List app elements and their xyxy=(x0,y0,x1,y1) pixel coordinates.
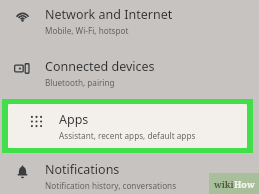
other: Connected devices xyxy=(0,60,45,77)
staticText: Notification history, conversations xyxy=(45,180,177,191)
staticText: Apps xyxy=(59,111,89,128)
button[interactable]: Network and Internet xyxy=(0,0,259,36)
button[interactable]: Apps xyxy=(14,104,247,141)
staticText: wiki xyxy=(214,178,234,190)
staticText: Connected devices xyxy=(45,58,155,75)
button[interactable]: Connected devices xyxy=(0,52,259,88)
staticText: How xyxy=(234,178,255,190)
other: Network and Internet xyxy=(0,8,45,25)
button[interactable]: Apps xyxy=(8,104,247,148)
staticText: Bluetooth, pairing xyxy=(45,77,115,88)
staticText: Notifications xyxy=(45,161,120,178)
other: Apps xyxy=(14,113,59,130)
button[interactable]: Notifications xyxy=(0,155,259,191)
staticText: Network and Internet xyxy=(45,6,173,23)
other: Notifications xyxy=(0,163,45,180)
staticText: Mobile, Wi-Fi, hotspot xyxy=(45,25,129,36)
staticText: Assistant, recent apps, default apps xyxy=(59,130,196,141)
